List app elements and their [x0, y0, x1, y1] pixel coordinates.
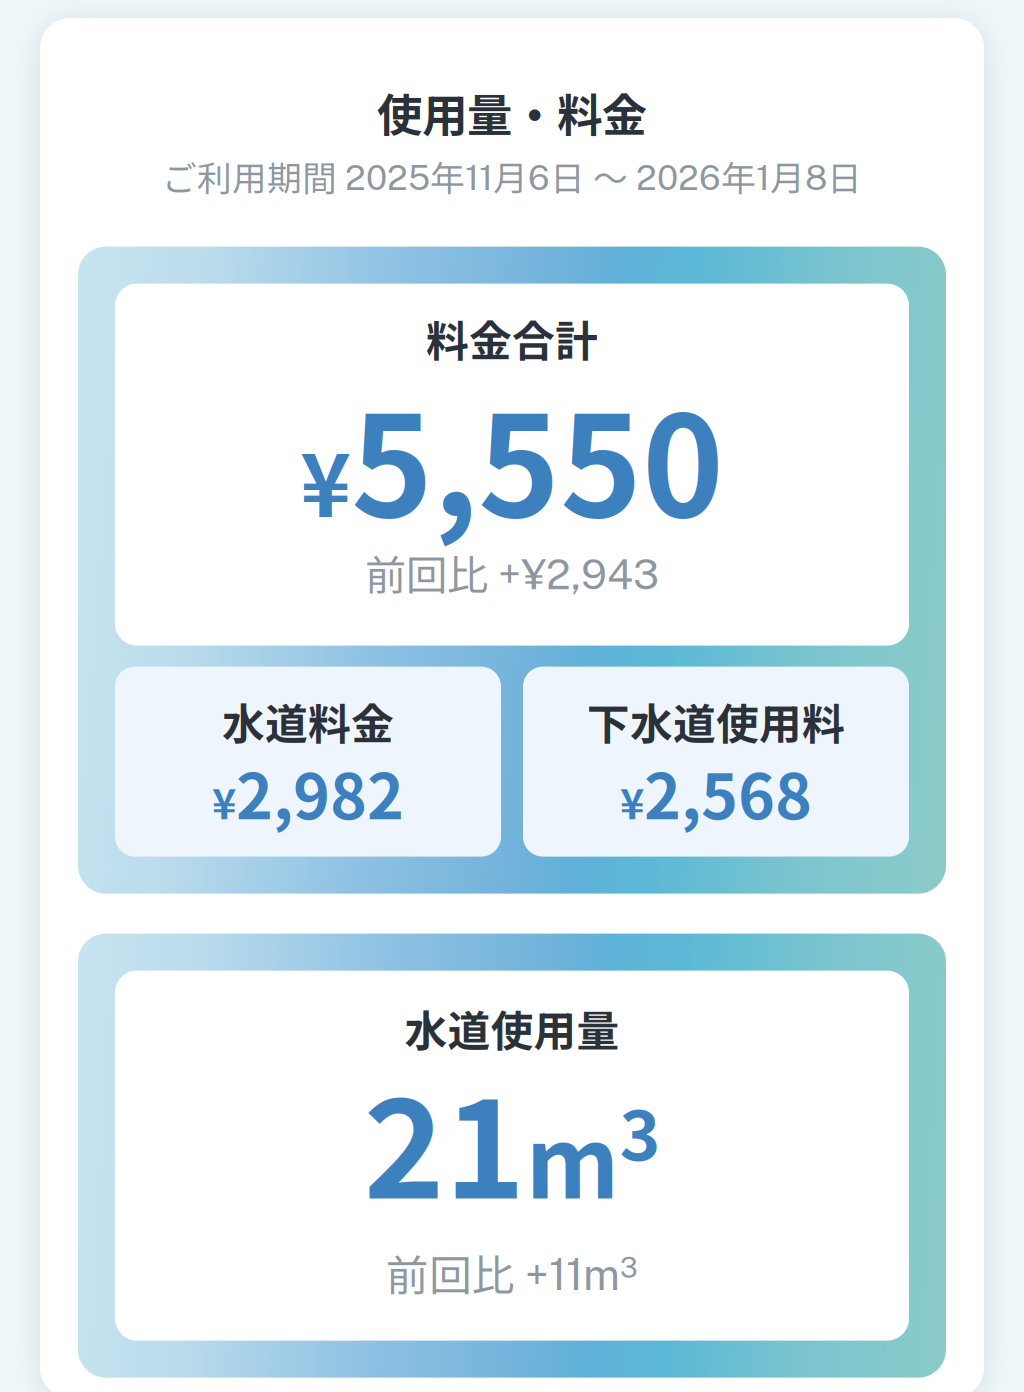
staticText: 水道使用量 [404, 1002, 619, 1055]
staticText: 前回比 +¥2,943 [365, 547, 659, 598]
staticText: ¥2,982 [212, 748, 404, 836]
staticText: 21m3 [363, 1042, 660, 1235]
staticText: 前回比 +11m3 [386, 1243, 638, 1303]
staticText: 水道料金 [222, 695, 394, 748]
staticText: ¥2,568 [620, 748, 812, 836]
staticText: 下水道使用料 [587, 695, 845, 748]
staticText: 料金合計 [426, 312, 598, 365]
staticText: ¥5,550 [300, 359, 724, 554]
staticText: ご利用期間 2025年11月6日 〜 2026年1月8日 [162, 154, 862, 198]
staticText: 使用量・料金 [377, 84, 647, 140]
